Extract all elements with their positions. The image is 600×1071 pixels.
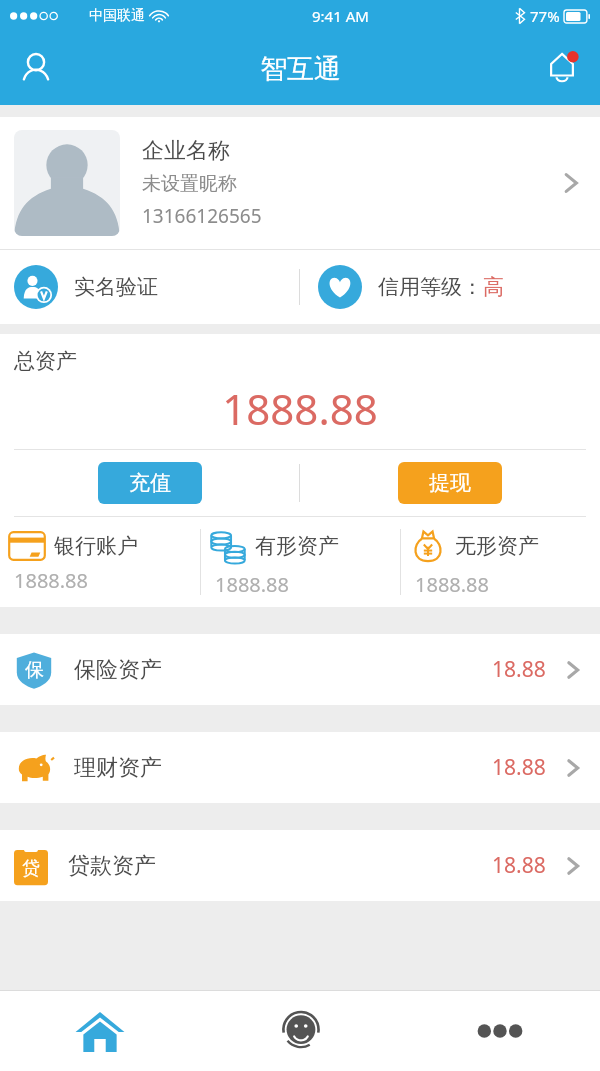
staticText: 中国联通	[89, 7, 145, 25]
staticText: 理财资产	[74, 754, 162, 782]
button[interactable]: Profile	[8, 41, 64, 97]
staticText: 1888.88	[0, 380, 600, 437]
staticText: 有形资产	[255, 533, 339, 559]
button[interactable]: 银行账户	[0, 517, 200, 607]
staticText: 企业名称	[142, 137, 230, 165]
button[interactable]: 有形资产	[201, 517, 400, 607]
button[interactable]: Home	[0, 991, 200, 1071]
staticText: 智互通	[260, 52, 341, 86]
button[interactable]: 充值	[98, 462, 202, 504]
staticText: 总资产	[14, 348, 77, 374]
staticText: 9:41 AM	[312, 6, 369, 26]
staticText: 1888.88	[14, 567, 88, 594]
staticText: 保险资产	[74, 656, 162, 684]
button[interactable]: 实名验证	[0, 250, 299, 324]
staticText: 贷	[22, 857, 40, 880]
button[interactable]: 企业名称	[0, 117, 600, 249]
staticText: 贷款资产	[68, 852, 156, 880]
staticText: 银行账户	[54, 533, 138, 559]
staticText: 1888.88	[215, 571, 289, 598]
button[interactable]: 无形资产	[401, 517, 600, 607]
button[interactable]: 理财资产	[0, 732, 600, 803]
staticText: 保	[25, 658, 44, 682]
button[interactable]: 保	[0, 634, 600, 705]
staticText: 实名验证	[74, 274, 158, 300]
button[interactable]: Notifications	[534, 41, 590, 97]
staticText: 充值	[129, 470, 171, 496]
button[interactable]: 提现	[398, 462, 502, 504]
button[interactable]: More	[400, 991, 600, 1071]
staticText: 提现	[429, 470, 471, 496]
button[interactable]: 贷	[0, 830, 600, 901]
staticText: 信用等级：	[378, 274, 483, 300]
staticText: 77%	[530, 6, 560, 26]
staticText: 无形资产	[455, 533, 539, 559]
button[interactable]: Customer service	[200, 991, 400, 1071]
staticText: 18.88	[492, 851, 546, 880]
staticText: 高	[483, 274, 504, 300]
staticText: 未设置昵称	[142, 172, 237, 196]
staticText: 1888.88	[415, 571, 489, 598]
staticText: 18.88	[492, 753, 546, 782]
staticText: 18.88	[492, 655, 546, 684]
button[interactable]: 信用等级：	[300, 250, 600, 324]
staticText: 13166126565	[142, 203, 262, 229]
